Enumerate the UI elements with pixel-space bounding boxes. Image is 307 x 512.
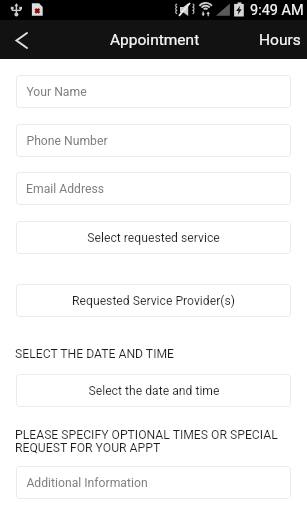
button[interactable]: Phone Number bbox=[16, 124, 291, 157]
staticText: Hours bbox=[259, 31, 301, 49]
staticText: Your Name bbox=[26, 85, 87, 99]
staticText: Appointment bbox=[110, 31, 200, 49]
button[interactable]: Hours bbox=[249, 20, 307, 59]
button[interactable]: Your Name bbox=[16, 75, 291, 108]
button[interactable]: Back bbox=[0, 20, 40, 59]
staticText: Requested Service Provider(s) bbox=[72, 294, 235, 308]
staticText: Select requested service bbox=[87, 231, 220, 245]
staticText: Email Address bbox=[26, 182, 104, 196]
staticText: 9:49 AM bbox=[250, 2, 304, 19]
button[interactable]: Select requested service bbox=[16, 221, 291, 254]
button[interactable]: Select the date and time bbox=[16, 374, 291, 407]
staticText: Additional Information bbox=[26, 476, 148, 490]
staticText: SELECT THE DATE AND TIME bbox=[15, 347, 175, 361]
staticText: PLEASE SPECIFY OPTIONAL TIMES OR SPECIAL… bbox=[15, 428, 295, 455]
staticText: Phone Number bbox=[26, 134, 108, 148]
button[interactable]: Requested Service Provider(s) bbox=[16, 284, 291, 317]
staticText: Select the date and time bbox=[88, 384, 220, 398]
button[interactable]: Additional Information bbox=[16, 466, 291, 499]
button[interactable]: Email Address bbox=[16, 172, 291, 205]
